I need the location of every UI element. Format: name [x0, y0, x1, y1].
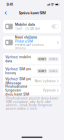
button[interactable]: Výchozí SIM pro iMessage — [3, 77, 61, 85]
button[interactable]: Plnohodnotné fungování — [3, 86, 61, 95]
staticText: Výchozí SIM pro — [5, 67, 31, 71]
button[interactable]: SIM 2 — [48, 69, 59, 73]
staticText: Přidat eSIM — [15, 39, 33, 43]
button[interactable]: SIM 1 — [37, 69, 47, 73]
button[interactable]: SIM 2 — [48, 57, 59, 61]
button[interactable]: Back — [3, 9, 8, 17]
staticText: SIM 2 — [49, 58, 57, 61]
staticText: Správa karet SIM — [18, 11, 45, 15]
staticText: Tarif · 7,5 GB dat — [15, 27, 40, 30]
staticText: Výchozí mobilní — [5, 55, 31, 59]
staticText: Plnohodnotné použití dvou karet SIM vyža… — [6, 97, 58, 110]
staticText: Není vybráno — [35, 79, 56, 83]
staticText: dvou karet SIM — [5, 92, 29, 96]
staticText: SIM 1 — [39, 69, 46, 73]
staticText: SIM 2 — [49, 69, 57, 73]
staticText: SIM 1 — [39, 58, 46, 61]
staticText: Vypnuto — [43, 89, 56, 92]
button[interactable]: Není vloženo — [3, 36, 61, 49]
staticText: Mobilní data — [15, 22, 35, 26]
staticText: data — [5, 59, 12, 63]
button[interactable]: SIM 1 — [37, 57, 47, 61]
staticText: Není vloženo — [15, 35, 37, 39]
button[interactable]: Mobilní data — [3, 20, 61, 33]
staticText: hovory — [5, 71, 16, 75]
staticText: Výchozí SIM pro iMessage — [5, 77, 31, 85]
staticText: 9:41 — [7, 2, 13, 7]
staticText: Plnohodnotné fungování — [5, 84, 27, 92]
staticText: Převést tarif z jiného iPhonu — [15, 43, 44, 50]
